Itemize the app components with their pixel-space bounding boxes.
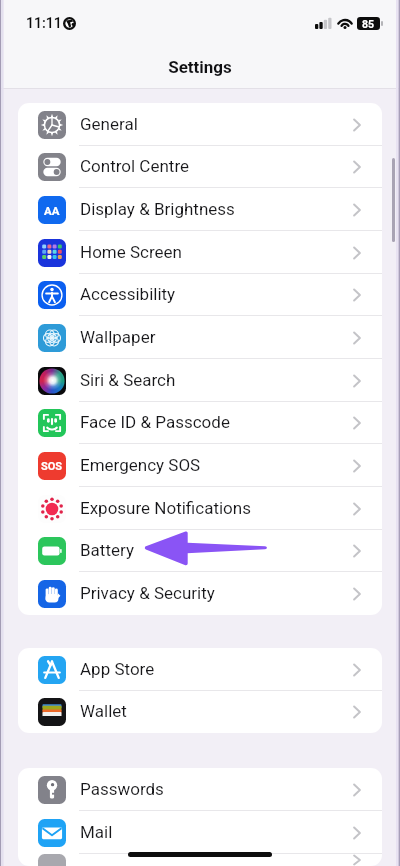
staticText: 11:11 [26, 15, 62, 31]
button[interactable]: AA [18, 188, 382, 231]
button[interactable]: Wallpaper [18, 316, 382, 359]
staticText: AA [44, 204, 60, 217]
staticText: Exposure Notifications [80, 498, 251, 518]
button[interactable]: Face ID & Passcode [18, 402, 382, 444]
staticText: Emergency SOS [80, 455, 201, 475]
staticText: App Store [80, 659, 155, 679]
staticText: 85 [362, 18, 375, 30]
staticText: Settings [168, 57, 232, 77]
staticText: Battery [80, 540, 134, 560]
button[interactable]: SOS [18, 444, 382, 487]
button[interactable]: Control Centre [18, 146, 382, 188]
staticText: Mail [80, 822, 113, 842]
button[interactable]: Wallet [18, 691, 382, 733]
staticText: Home Screen [80, 242, 182, 262]
button[interactable]: Passwords [18, 768, 382, 811]
staticText: Passwords [80, 779, 164, 799]
staticText: Face ID & Passcode [80, 412, 230, 432]
button[interactable]: Home Screen [18, 231, 382, 274]
button[interactable]: Safari settings [18, 854, 382, 866]
button[interactable]: Battery [18, 530, 382, 572]
staticText: SOS [41, 460, 63, 473]
staticText: Siri & Search [80, 370, 176, 390]
staticText: Accessibility [80, 284, 176, 304]
button[interactable]: App Store [18, 648, 382, 691]
staticText: Wallet [80, 701, 127, 721]
button[interactable]: Accessibility [18, 274, 382, 316]
button[interactable]: Mail [18, 811, 382, 854]
staticText: General [80, 114, 138, 134]
button[interactable]: Privacy & Security [18, 572, 382, 615]
button[interactable]: Exposure Notifications [18, 487, 382, 530]
staticText: Display & Brightness [80, 199, 235, 219]
staticText: Privacy & Security [80, 583, 215, 603]
staticText: Control Centre [80, 156, 189, 176]
staticText: Wallpaper [80, 327, 156, 347]
button[interactable]: General [18, 103, 382, 146]
button[interactable]: Siri & Search [18, 359, 382, 402]
